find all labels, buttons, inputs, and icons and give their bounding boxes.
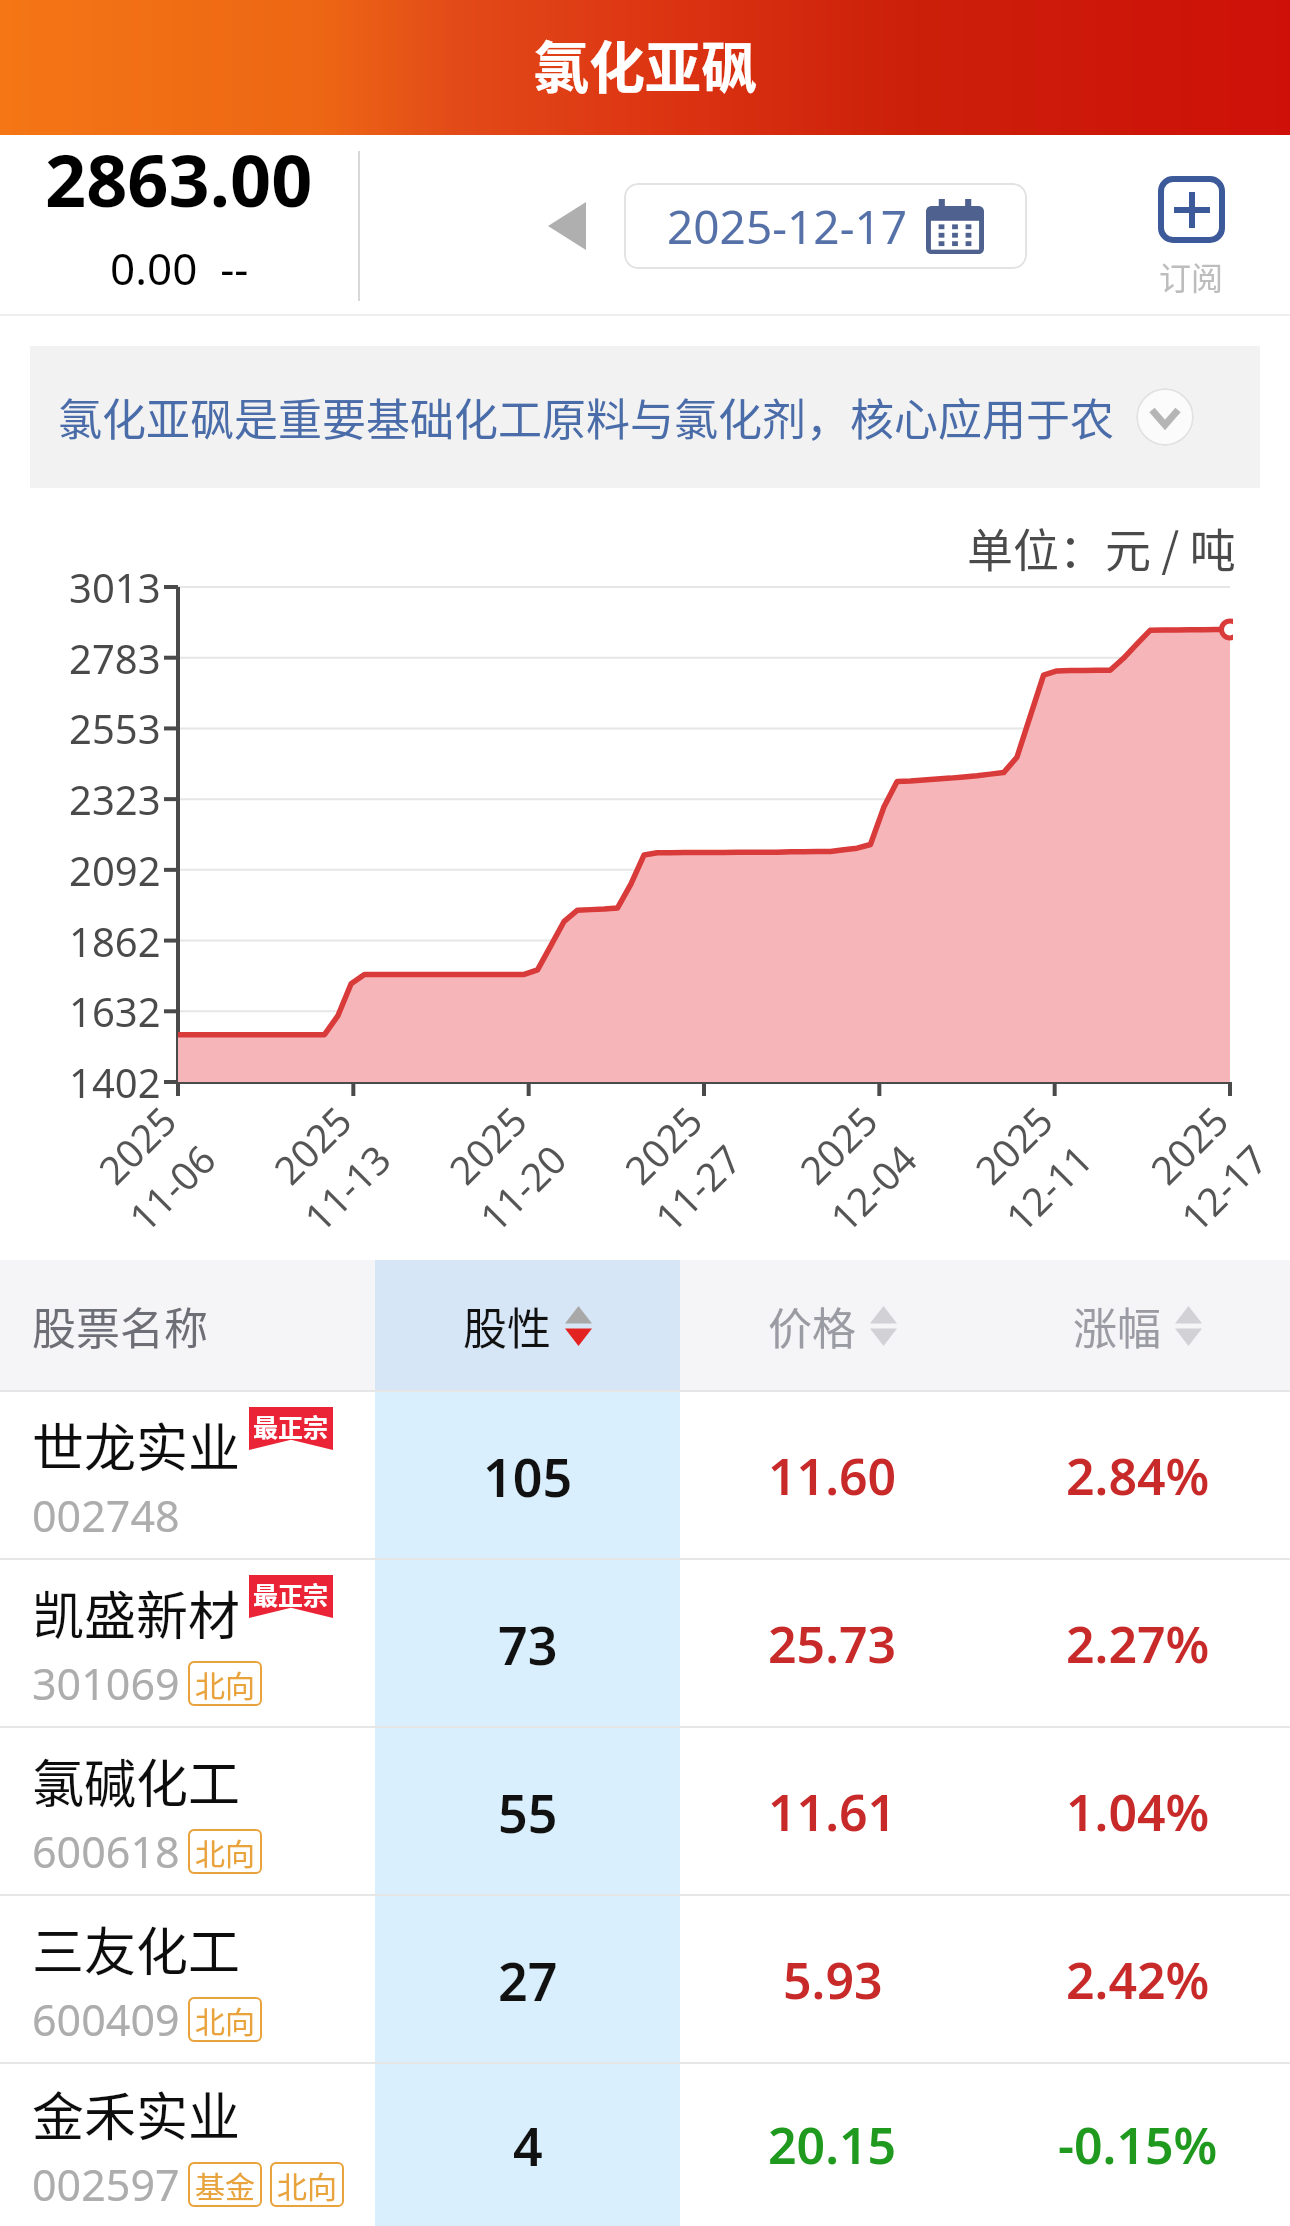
button[interactable]: 股性 — [375, 1260, 680, 1392]
button[interactable]: 世龙实业 — [0, 1392, 1290, 1560]
staticText: 北向 — [277, 2163, 337, 2206]
staticText: 1.04% — [1066, 1778, 1210, 1846]
staticText: 301069 — [32, 1654, 180, 1713]
staticText: 最正宗 — [253, 1576, 329, 1612]
button[interactable]: 金禾实业 — [0, 2064, 1290, 2226]
staticText: 涨幅 — [1073, 1294, 1161, 1358]
staticText: 002597 — [32, 2155, 180, 2214]
staticText: 订阅 — [1159, 253, 1224, 299]
staticText: 600618 — [32, 1822, 180, 1881]
staticText: 5.93 — [783, 1946, 883, 2014]
staticText: 氯化亚砜 — [533, 23, 757, 104]
button[interactable]: 三友化工 — [0, 1896, 1290, 2064]
button[interactable]: 涨幅 — [985, 1260, 1290, 1392]
staticText: 北向 — [195, 1998, 255, 2041]
staticText: 0.00 -- — [110, 238, 249, 298]
staticText: 2.84% — [1066, 1442, 1210, 1510]
button[interactable]: 氯碱化工 — [0, 1728, 1290, 1896]
staticText: 25.73 — [768, 1610, 897, 1678]
staticText: 4 — [513, 2110, 543, 2181]
staticText: 002748 — [32, 1486, 180, 1545]
button[interactable]: Pick date 2025-12-17 — [624, 183, 1027, 269]
staticText: 2.42% — [1066, 1946, 1210, 2014]
staticText: 2.27% — [1066, 1610, 1210, 1678]
staticText: 最正宗 — [253, 1408, 329, 1444]
staticText: 世龙实业 — [32, 1407, 241, 1482]
staticText: 20.15 — [768, 2111, 897, 2179]
staticText: 2025-12-17 — [667, 195, 908, 258]
staticText: 27 — [498, 1945, 558, 2016]
staticText: 价格 — [768, 1294, 856, 1358]
staticText: 105 — [483, 1441, 573, 1512]
staticText: 氯化亚砜是重要基础化工原料与氯化剂，核心应用于农 — [58, 385, 1114, 449]
button[interactable]: 价格 — [680, 1260, 985, 1392]
button[interactable]: Expand description — [1136, 388, 1194, 446]
staticText: 北向 — [195, 1662, 255, 1705]
button[interactable]: Subscribe — [1108, 176, 1274, 299]
staticText: 金禾实业 — [32, 2076, 241, 2151]
staticText: 2863.00 — [45, 130, 313, 228]
staticText: 氯碱化工 — [32, 1743, 241, 1818]
staticText: 股票名称 — [32, 1294, 208, 1358]
staticText: -0.15% — [1058, 2111, 1218, 2179]
staticText: 55 — [498, 1777, 558, 1848]
staticText: 股性 — [463, 1294, 551, 1358]
staticText: 三友化工 — [32, 1911, 241, 1986]
staticText: 基金 — [195, 2163, 255, 2206]
staticText: 11.61 — [768, 1778, 897, 1846]
staticText: 600409 — [32, 1990, 180, 2049]
button[interactable]: 凯盛新材 — [0, 1560, 1290, 1728]
staticText: 11.60 — [768, 1442, 897, 1510]
button[interactable]: Previous day — [530, 189, 604, 263]
staticText: 73 — [498, 1609, 558, 1680]
button[interactable]: Product description, tap to expand — [30, 346, 1260, 488]
staticText: 北向 — [195, 1830, 255, 1873]
staticText: 凯盛新材 — [32, 1575, 241, 1650]
